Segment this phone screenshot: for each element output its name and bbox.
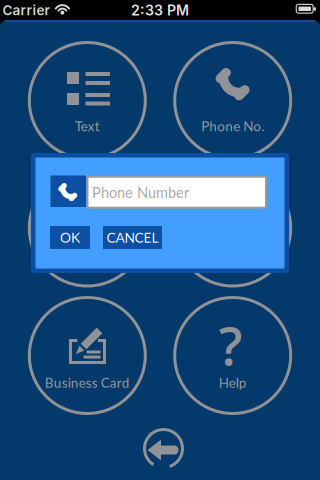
button[interactable]: ? bbox=[171, 293, 295, 417]
button[interactable]: Business Card bbox=[25, 293, 149, 417]
button[interactable]: Back bbox=[133, 418, 193, 478]
staticText: Phone Number bbox=[92, 184, 189, 201]
staticText: CANCEL bbox=[106, 229, 158, 246]
button[interactable]: OK bbox=[50, 226, 90, 249]
button[interactable]: Text bbox=[25, 38, 149, 162]
staticText: 2:33 PM bbox=[131, 2, 189, 19]
staticText: Business Card bbox=[45, 374, 130, 391]
staticText: Phone No. bbox=[201, 118, 264, 134]
staticText: Carrier bbox=[2, 2, 49, 19]
staticText: ? bbox=[219, 310, 243, 381]
staticText: OK bbox=[60, 229, 80, 246]
button[interactable]: Phone Number bbox=[86, 176, 267, 209]
staticText: Help bbox=[219, 374, 247, 391]
button[interactable]: CANCEL bbox=[103, 226, 162, 249]
button[interactable]: Phone No. bbox=[171, 38, 295, 162]
staticText: Text bbox=[75, 118, 100, 134]
